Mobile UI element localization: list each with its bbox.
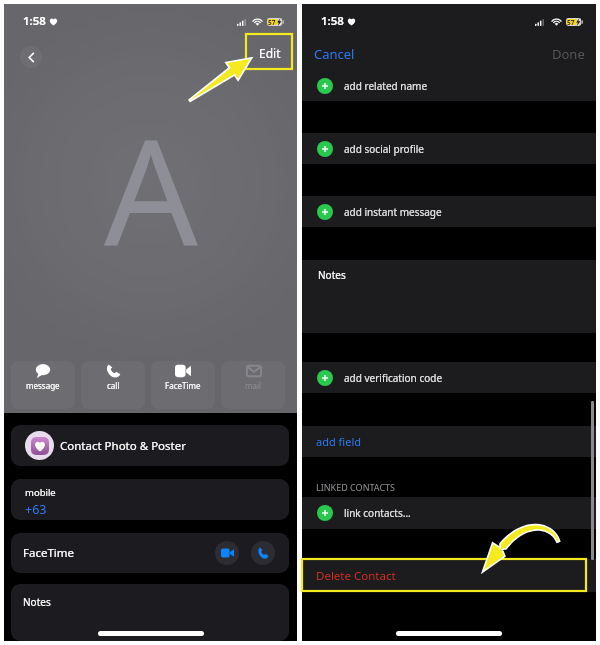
button[interactable]: mail — [221, 361, 285, 409]
staticText: Contact Photo & Poster — [60, 438, 186, 454]
staticText: +63 — [25, 501, 47, 518]
staticText: message — [26, 380, 60, 391]
button[interactable]: call — [81, 361, 145, 409]
staticText: call — [107, 380, 120, 391]
staticText: mobile — [25, 486, 56, 499]
button[interactable]: link contacts... — [302, 497, 596, 529]
button[interactable]: add verification code — [302, 362, 596, 393]
button[interactable]: add instant message — [302, 196, 596, 227]
staticText: 57 — [268, 18, 276, 26]
button[interactable]: Delete Contact — [302, 559, 596, 592]
staticText: add verification code — [344, 371, 443, 385]
staticText: add field — [316, 434, 361, 449]
staticText: 1:58 — [321, 13, 344, 29]
staticText: 1:58 — [23, 13, 46, 29]
staticText: add instant message — [344, 205, 442, 219]
staticText: Done — [552, 45, 585, 63]
staticText: A — [104, 88, 198, 288]
staticText: Notes — [23, 595, 51, 609]
staticText: LINKED CONTACTS — [316, 481, 396, 493]
staticText: FaceTime — [165, 380, 201, 391]
button[interactable]: Done — [552, 45, 585, 63]
button[interactable]: FaceTime — [11, 533, 289, 573]
button[interactable]: FaceTime — [151, 361, 215, 409]
staticText: add social profile — [344, 142, 424, 156]
staticText: link contacts... — [344, 506, 411, 520]
button[interactable]: Cancel — [314, 45, 355, 63]
button[interactable]: Edit — [249, 37, 291, 68]
button[interactable]: message — [11, 361, 75, 409]
button[interactable]: Contact Photo & Poster — [11, 425, 289, 466]
button[interactable]: mobile — [11, 479, 289, 520]
button[interactable]: add social profile — [302, 133, 596, 164]
button[interactable]: add field — [302, 426, 596, 457]
staticText: Edit — [259, 45, 281, 61]
button[interactable]: FaceTime video — [215, 541, 239, 565]
button[interactable]: Back — [20, 46, 42, 68]
button[interactable]: Call — [251, 541, 275, 565]
staticText: mail — [245, 380, 262, 391]
staticText: Delete Contact — [316, 568, 396, 584]
staticText: Cancel — [314, 45, 355, 63]
staticText: 57 — [567, 18, 575, 26]
staticText: FaceTime — [23, 545, 75, 561]
staticText: Notes — [318, 268, 346, 282]
button[interactable]: add related name — [302, 70, 596, 101]
staticText: add related name — [344, 79, 428, 93]
button[interactable]: Notes — [11, 584, 289, 641]
button[interactable]: Notes — [302, 260, 596, 333]
